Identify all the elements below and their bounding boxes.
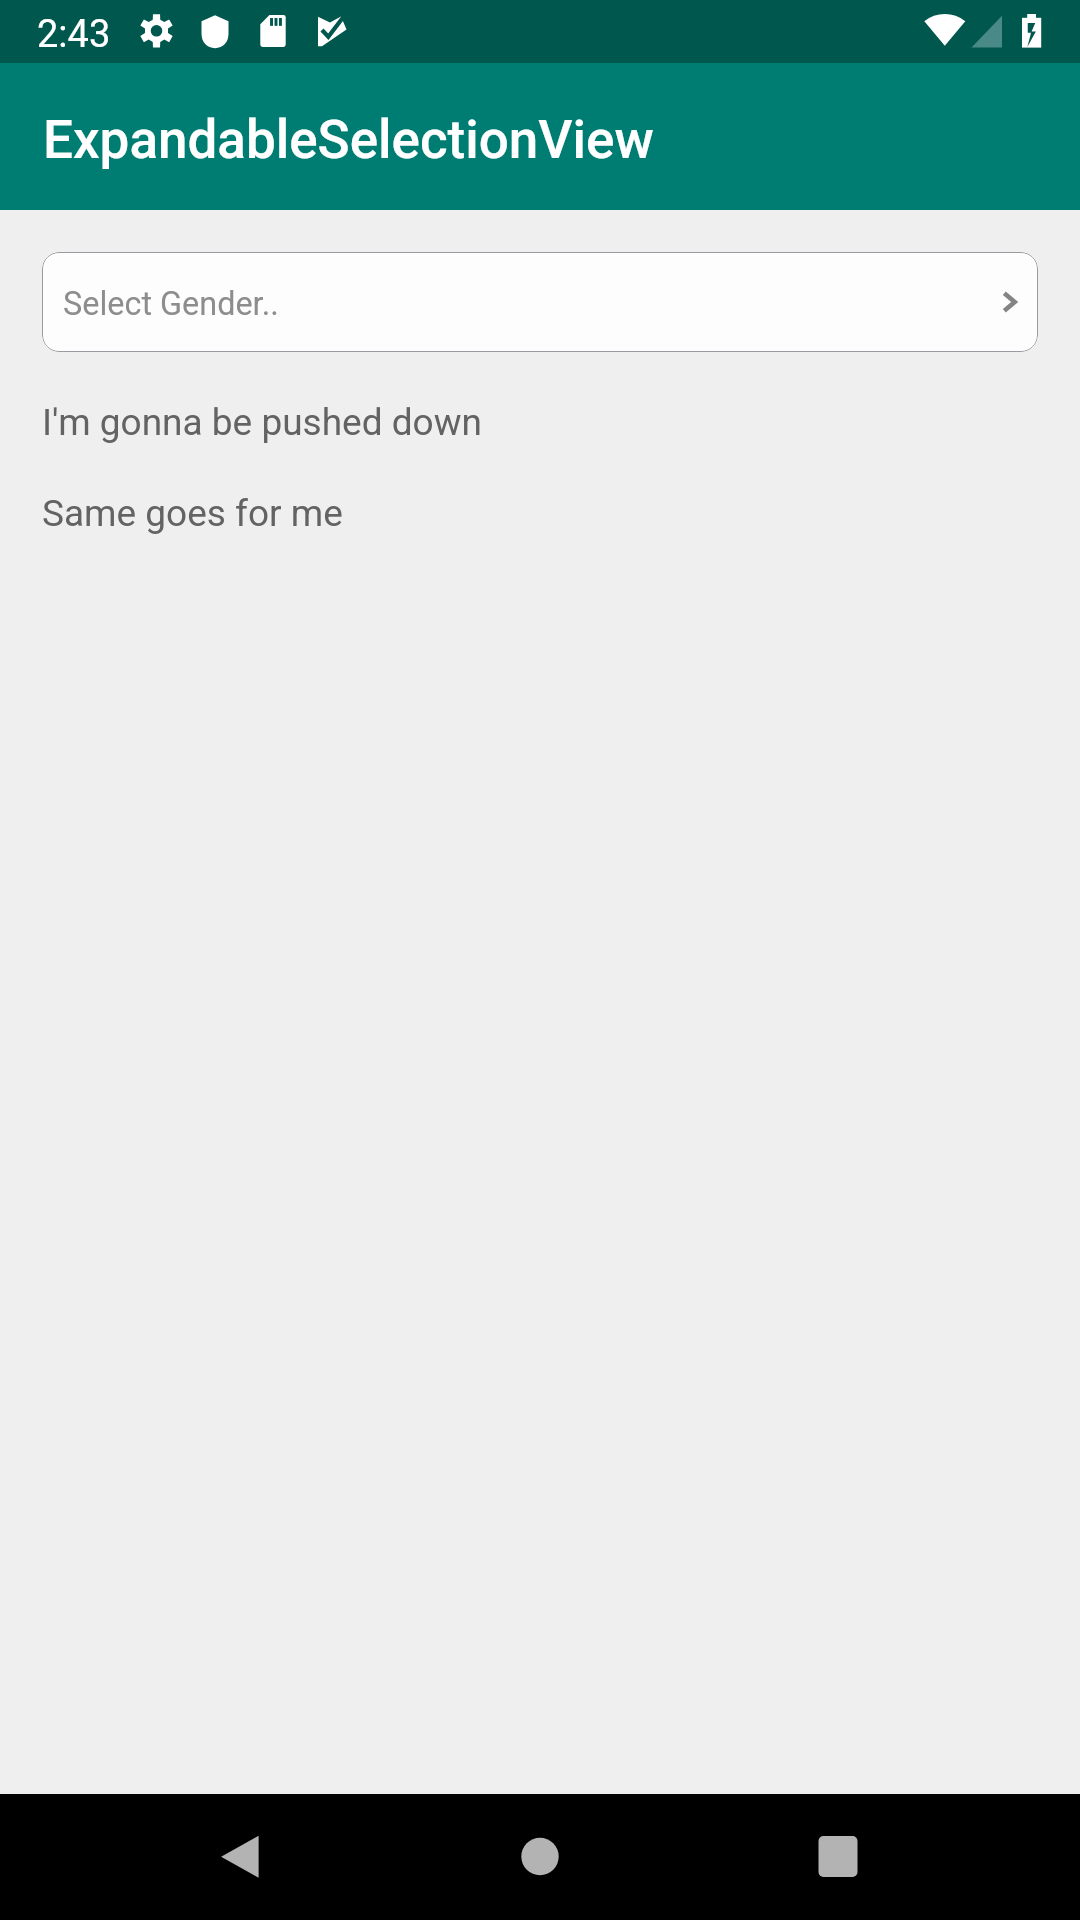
staticText: ExpandableSelectionView <box>43 109 654 171</box>
button[interactable]: Recents <box>778 1794 898 1920</box>
staticText: I'm gonna be pushed down <box>42 401 482 444</box>
staticText: Same goes for me <box>42 492 343 535</box>
staticText: Select Gender.. <box>63 285 279 323</box>
button[interactable]: Select Gender.. <box>42 252 1038 352</box>
staticText: 2:43 <box>37 12 111 57</box>
button[interactable]: Back <box>180 1794 300 1920</box>
button[interactable]: Home <box>480 1794 600 1920</box>
